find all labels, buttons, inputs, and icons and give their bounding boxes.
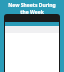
staticText: the Week [20, 9, 44, 16]
staticText: New Sheets During [8, 2, 56, 9]
